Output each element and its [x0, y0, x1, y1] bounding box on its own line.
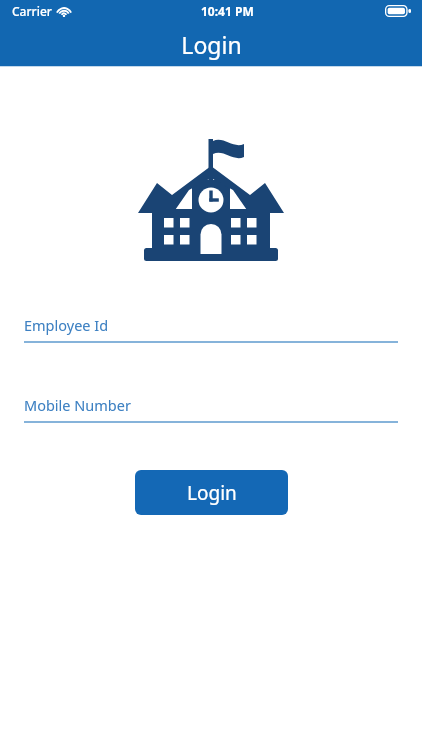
staticText: 10:41 PM — [201, 3, 254, 19]
other: Wi-Fi — [57, 6, 71, 17]
button[interactable]: Login — [135, 470, 288, 515]
button[interactable]: Mobile Number — [24, 395, 398, 423]
other: Battery full — [385, 5, 411, 17]
staticText: Mobile Number — [24, 395, 131, 415]
staticText: Login — [187, 480, 237, 506]
staticText: Login — [181, 29, 242, 60]
other: School logo — [137, 138, 285, 268]
button[interactable]: Employee Id — [24, 315, 398, 343]
staticText: Carrier — [12, 3, 52, 19]
staticText: Employee Id — [24, 315, 109, 335]
